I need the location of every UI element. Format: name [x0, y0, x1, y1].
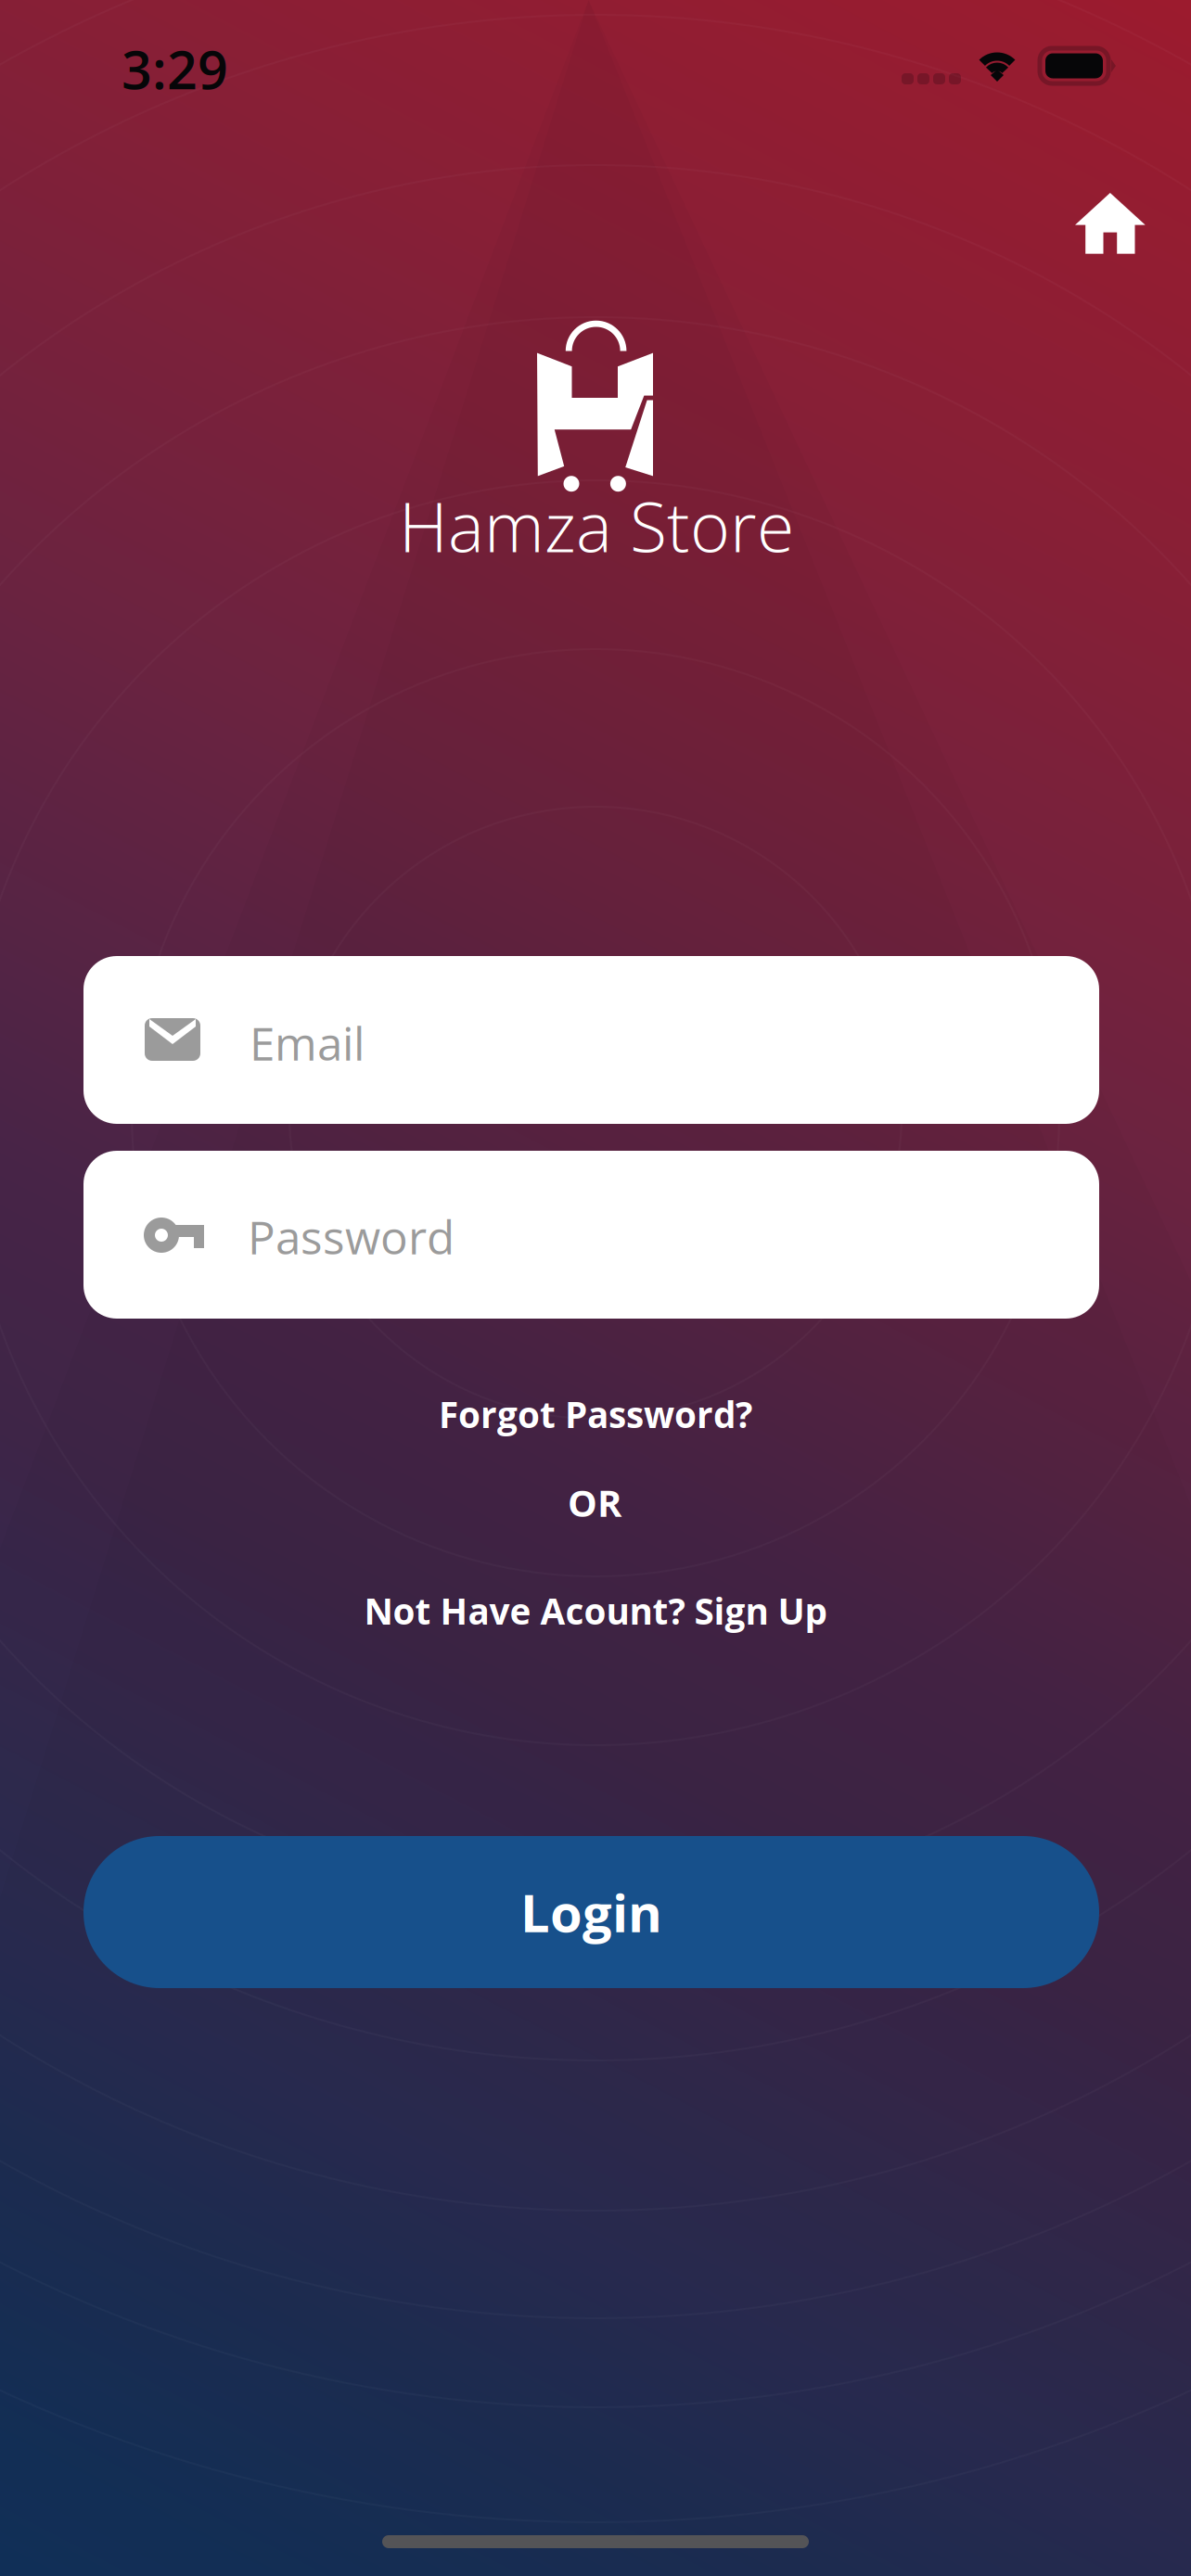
staticText: Email	[250, 1012, 365, 1074]
staticText: 3:29	[122, 32, 228, 105]
staticText: Forgot Password?	[439, 1390, 752, 1439]
staticText: Not Have Acount? Sign Up	[364, 1586, 827, 1635]
button[interactable]: Not Have Acount? Sign Up	[336, 1575, 855, 1646]
button[interactable]: Login	[83, 1836, 1099, 1988]
staticText: Login	[520, 1877, 662, 1947]
staticText: OR	[568, 1477, 621, 1528]
button[interactable]: Forgot Password?	[410, 1379, 781, 1449]
staticText: Hamza Store	[399, 479, 794, 572]
button[interactable]: Home	[1049, 162, 1172, 285]
staticText: Password	[248, 1205, 455, 1268]
